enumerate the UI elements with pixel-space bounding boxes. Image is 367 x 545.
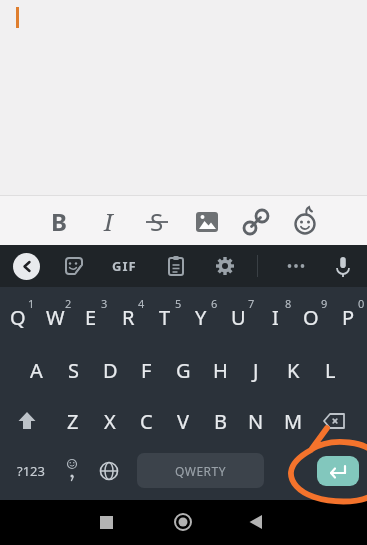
button[interactable] (236, 201, 276, 241)
staticText: Y (195, 304, 207, 331)
button[interactable] (285, 201, 325, 241)
staticText: X (104, 408, 116, 435)
button[interactable]: J (238, 346, 274, 394)
button[interactable] (317, 456, 359, 486)
staticText: O (303, 304, 319, 331)
button[interactable]: S (137, 201, 177, 241)
button[interactable]: X (92, 397, 128, 445)
button[interactable] (160, 250, 192, 282)
staticText: 3 (101, 296, 108, 311)
staticText: 9 (321, 296, 328, 311)
button[interactable]: B (202, 397, 238, 445)
button[interactable]: W (37, 293, 73, 341)
staticText: J (253, 357, 259, 384)
staticText: S (150, 205, 164, 238)
staticText: L (325, 357, 336, 384)
staticText: B (214, 408, 227, 435)
staticText: N (248, 408, 264, 435)
button[interactable]: R (110, 293, 146, 341)
staticText: F (141, 357, 152, 384)
button[interactable]: G (165, 346, 201, 394)
button[interactable]: D (92, 346, 128, 394)
button[interactable]: Z (55, 397, 91, 445)
staticText: U (231, 304, 246, 331)
staticText: 6 (211, 296, 218, 311)
staticText: V (177, 408, 189, 435)
staticText: 2 (65, 296, 72, 311)
button[interactable]: C (128, 397, 164, 445)
staticText: 4 (138, 296, 145, 311)
button[interactable]: T (147, 293, 183, 341)
button[interactable]: M (275, 397, 311, 445)
staticText: 0 (358, 296, 365, 311)
button[interactable]: N (238, 397, 274, 445)
staticText: S (68, 357, 79, 384)
staticText: Z (67, 408, 79, 435)
staticText: M (284, 408, 303, 435)
button[interactable]: GIF (106, 254, 142, 278)
button[interactable]: I (88, 201, 128, 241)
button[interactable]: H (202, 346, 238, 394)
button[interactable] (56, 449, 88, 493)
button[interactable]: ?123 (7, 449, 55, 493)
staticText: K (287, 357, 300, 384)
button[interactable] (58, 250, 90, 282)
staticText: H (213, 357, 228, 384)
staticText: E (85, 304, 97, 331)
button[interactable] (327, 250, 359, 282)
button[interactable]: I (257, 293, 293, 341)
button[interactable]: QWERTY (137, 453, 264, 488)
staticText: T (159, 304, 171, 331)
staticText: B (51, 205, 67, 238)
button[interactable]: P (330, 293, 366, 341)
staticText: I (104, 205, 113, 238)
button[interactable]: E (73, 293, 109, 341)
button[interactable]: A (18, 346, 54, 394)
button[interactable] (280, 250, 312, 282)
button[interactable] (209, 250, 241, 282)
button[interactable]: O (293, 293, 329, 341)
button[interactable]: Q (0, 293, 36, 341)
staticText: QWERTY (175, 463, 227, 479)
staticText: W (46, 304, 65, 331)
staticText: D (103, 357, 118, 384)
button[interactable]: V (165, 397, 201, 445)
button[interactable] (93, 455, 125, 487)
staticText: Q (10, 304, 26, 331)
staticText: 7 (248, 296, 255, 311)
button[interactable]: K (275, 346, 311, 394)
button[interactable]: U (220, 293, 256, 341)
button[interactable] (187, 201, 227, 241)
staticText: 5 (175, 296, 182, 311)
button[interactable] (5, 399, 49, 443)
staticText: A (30, 357, 43, 384)
staticText: 8 (285, 296, 292, 311)
button[interactable]: Y (183, 293, 219, 341)
button[interactable]: L (312, 346, 348, 394)
staticText: GIF (112, 257, 137, 275)
staticText: G (176, 357, 191, 384)
button[interactable]: F (128, 346, 164, 394)
button[interactable]: B (39, 201, 79, 241)
button[interactable] (0, 0, 367, 195)
button[interactable] (12, 252, 40, 280)
staticText: I (272, 304, 279, 331)
staticText: P (342, 304, 355, 331)
staticText: R (122, 304, 135, 331)
button[interactable] (167, 506, 199, 538)
button[interactable]: S (55, 346, 91, 394)
button[interactable] (312, 399, 356, 443)
staticText: ?123 (17, 462, 45, 480)
button[interactable] (90, 506, 122, 538)
staticText: C (140, 408, 153, 435)
button[interactable] (240, 506, 272, 538)
staticText: 1 (28, 296, 35, 311)
